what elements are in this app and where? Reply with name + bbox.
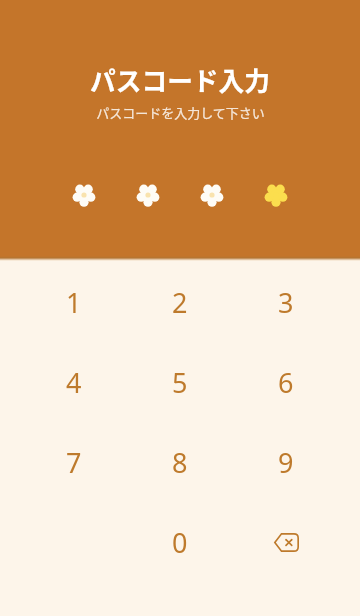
button[interactable]: 0 (127, 502, 233, 582)
button[interactable]: 2 (127, 262, 233, 342)
button[interactable]: 6 (233, 342, 339, 422)
staticText: 6 (278, 364, 294, 401)
staticText: 0 (172, 524, 188, 561)
button[interactable]: 1 (21, 262, 127, 342)
button[interactable]: 9 (233, 422, 339, 502)
staticText: 5 (172, 364, 188, 401)
staticText: パスコードを入力して下さい (96, 103, 265, 122)
button[interactable]: 5 (127, 342, 233, 422)
button[interactable]: 4 (21, 342, 127, 422)
staticText: 7 (66, 444, 82, 481)
button[interactable]: 7 (21, 422, 127, 502)
staticText: 1 (66, 284, 82, 321)
staticText: 3 (278, 284, 294, 321)
other: Backspace (262, 518, 310, 566)
staticText: 4 (66, 364, 82, 401)
staticText: パスコード入力 (90, 61, 270, 98)
button[interactable]: 8 (127, 422, 233, 502)
button[interactable]: Backspace (233, 502, 339, 582)
staticText: 8 (172, 444, 188, 481)
button[interactable]: 3 (233, 262, 339, 342)
staticText: 9 (278, 444, 294, 481)
staticText: 2 (172, 284, 188, 321)
